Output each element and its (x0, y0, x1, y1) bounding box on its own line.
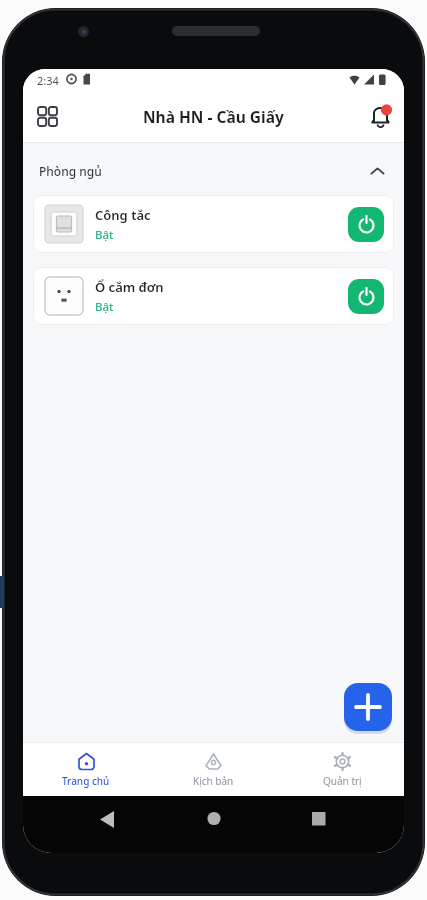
button[interactable]: Công tắc (33, 195, 394, 253)
staticText: Quản trị (323, 774, 362, 788)
button[interactable] (31, 100, 63, 132)
button[interactable] (364, 98, 396, 130)
staticText: Bật (95, 299, 114, 315)
button[interactable] (344, 683, 392, 731)
staticText: Ổ cắm đơn (95, 278, 164, 296)
button[interactable] (348, 279, 384, 314)
button[interactable]: Quản trị (315, 752, 369, 794)
button[interactable] (348, 207, 384, 242)
button[interactable]: Trang chủ (59, 752, 113, 794)
button[interactable]: Ổ cắm đơn (33, 267, 394, 325)
staticText: Công tắc (95, 206, 151, 224)
button[interactable]: Kịch bản (186, 752, 240, 794)
staticText: Bật (95, 227, 114, 243)
staticText: Nhà HN - Cầu Giấy (143, 106, 284, 127)
staticText: 2:34 (37, 73, 59, 88)
staticText: Phòng ngủ (39, 163, 102, 179)
staticText: Kịch bản (193, 774, 234, 788)
staticText: Trang chủ (62, 774, 110, 788)
button[interactable]: Phòng ngủ (23, 158, 404, 184)
